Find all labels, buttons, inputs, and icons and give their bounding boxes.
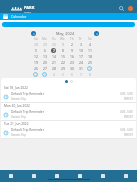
button[interactable]: 28: [49, 65, 58, 71]
staticText: Sat 18, Jun 2022: [4, 86, 28, 90]
button[interactable]: 17: [76, 53, 85, 59]
button[interactable]: 21: [49, 59, 58, 65]
button[interactable]: Trips: [22, 170, 45, 182]
staticText: Th: [70, 37, 74, 41]
button[interactable]: 9: [67, 47, 76, 53]
staticText: Mo: [42, 37, 47, 41]
button[interactable]: 30: [49, 41, 58, 47]
staticText: 2: [71, 42, 73, 47]
button[interactable]: 6: [67, 71, 76, 77]
staticText: 14: [52, 54, 56, 59]
staticText: Mon 20, Jun 2022: [4, 104, 30, 108]
staticText: 20: [43, 60, 47, 65]
button[interactable]: Default Trip Reminder: [1, 127, 136, 138]
button[interactable]: 5: [31, 47, 40, 53]
staticText: 4: [53, 72, 55, 77]
staticText: 7: [80, 72, 82, 77]
button[interactable]: 11: [85, 47, 94, 53]
staticText: 28: [52, 66, 56, 71]
staticText: Generic Trip: [11, 97, 26, 101]
staticText: 13: [43, 54, 47, 59]
button[interactable]: 6: [40, 47, 49, 53]
staticText: 15: [61, 54, 65, 59]
button[interactable]: 16: [67, 53, 76, 59]
button[interactable]: 4: [85, 41, 94, 47]
button[interactable]: 14: [49, 53, 58, 59]
button[interactable]: 1: [58, 41, 67, 47]
staticText: 22: [61, 60, 65, 65]
staticText: Tu: [52, 37, 56, 41]
staticText: 17: [79, 54, 83, 59]
button[interactable]: 7: [76, 71, 85, 77]
staticText: 3:00 - 5:00: [120, 128, 133, 132]
button[interactable]: 10: [76, 47, 85, 53]
staticText: 11: [88, 48, 92, 53]
button[interactable]: 25: [85, 59, 94, 65]
button[interactable]: 15: [58, 53, 67, 59]
button[interactable]: 24: [76, 59, 85, 65]
staticText: 6: [71, 72, 73, 77]
staticText: Default Trip Reminder: [11, 92, 44, 96]
button[interactable]: 1: [85, 65, 94, 71]
staticText: 10: [79, 48, 83, 53]
button[interactable]: 26: [31, 65, 40, 71]
staticText: 3: [80, 42, 82, 47]
button[interactable]: 23: [67, 59, 76, 65]
staticText: Default Trip Reminder: [11, 128, 44, 132]
button[interactable]: Default Trip Reminder: [1, 91, 136, 102]
staticText: 29: [61, 66, 65, 71]
staticText: 5: [62, 72, 64, 77]
button[interactable]: Messages: [45, 170, 68, 182]
button[interactable]: 8: [58, 47, 67, 53]
staticText: 8: [89, 72, 91, 77]
button[interactable]: 4: [49, 71, 58, 77]
button[interactable]: Search: [117, 4, 126, 13]
button[interactable]: 27: [40, 65, 49, 71]
staticText: hotels: [24, 10, 31, 13]
button[interactable]: Search: [91, 170, 114, 182]
staticText: 3:00 - 5:00: [120, 92, 133, 96]
button[interactable]: 2: [31, 71, 40, 77]
staticText: PARK: [24, 5, 35, 10]
staticText: 21: [52, 60, 56, 65]
staticText: Fr: [79, 37, 82, 41]
button[interactable]: 19: [31, 59, 40, 65]
button[interactable]: 29: [58, 65, 67, 71]
staticText: 30: [70, 66, 74, 71]
button[interactable]: 30: [67, 65, 76, 71]
button[interactable]: 3: [76, 41, 85, 47]
button[interactable]: 22: [58, 59, 67, 65]
button[interactable]: 2: [67, 41, 76, 47]
button[interactable]: 7: [49, 47, 58, 53]
button[interactable]: Previous month: [31, 31, 36, 36]
button[interactable]: 28: [31, 41, 40, 47]
button[interactable]: 29: [40, 41, 49, 47]
button[interactable]: 31: [76, 65, 85, 71]
button[interactable]: More: [114, 170, 137, 182]
button[interactable]: 8: [85, 71, 94, 77]
button[interactable]: 3: [40, 71, 49, 77]
button[interactable]: 12: [31, 53, 40, 59]
staticText: 25: [88, 60, 92, 65]
staticText: 30: [52, 42, 56, 47]
staticText: 12: [34, 54, 38, 59]
button[interactable]: Next month: [94, 31, 99, 36]
staticText: Generic Trip: [11, 133, 26, 137]
button[interactable]: Home: [0, 170, 22, 182]
button[interactable]: 5: [58, 71, 67, 77]
staticText: Tue 21, Jun 2022: [4, 122, 29, 126]
staticText: 28: [34, 42, 38, 47]
staticText: 24: [79, 60, 83, 65]
button[interactable]: Default Trip Reminder: [1, 109, 136, 120]
button[interactable]: Calendar: [68, 170, 91, 182]
button[interactable]: 20: [40, 59, 49, 65]
button[interactable]: Profile: [126, 4, 135, 13]
staticText: 31: [79, 66, 83, 71]
staticText: 19: [34, 60, 38, 65]
button[interactable]: 13: [40, 53, 49, 59]
staticText: 26: [34, 66, 38, 71]
staticText: Generic Trip: [11, 115, 26, 119]
staticText: 3: [44, 72, 46, 77]
staticText: 5: [35, 48, 37, 53]
button[interactable]: 18: [85, 53, 94, 59]
